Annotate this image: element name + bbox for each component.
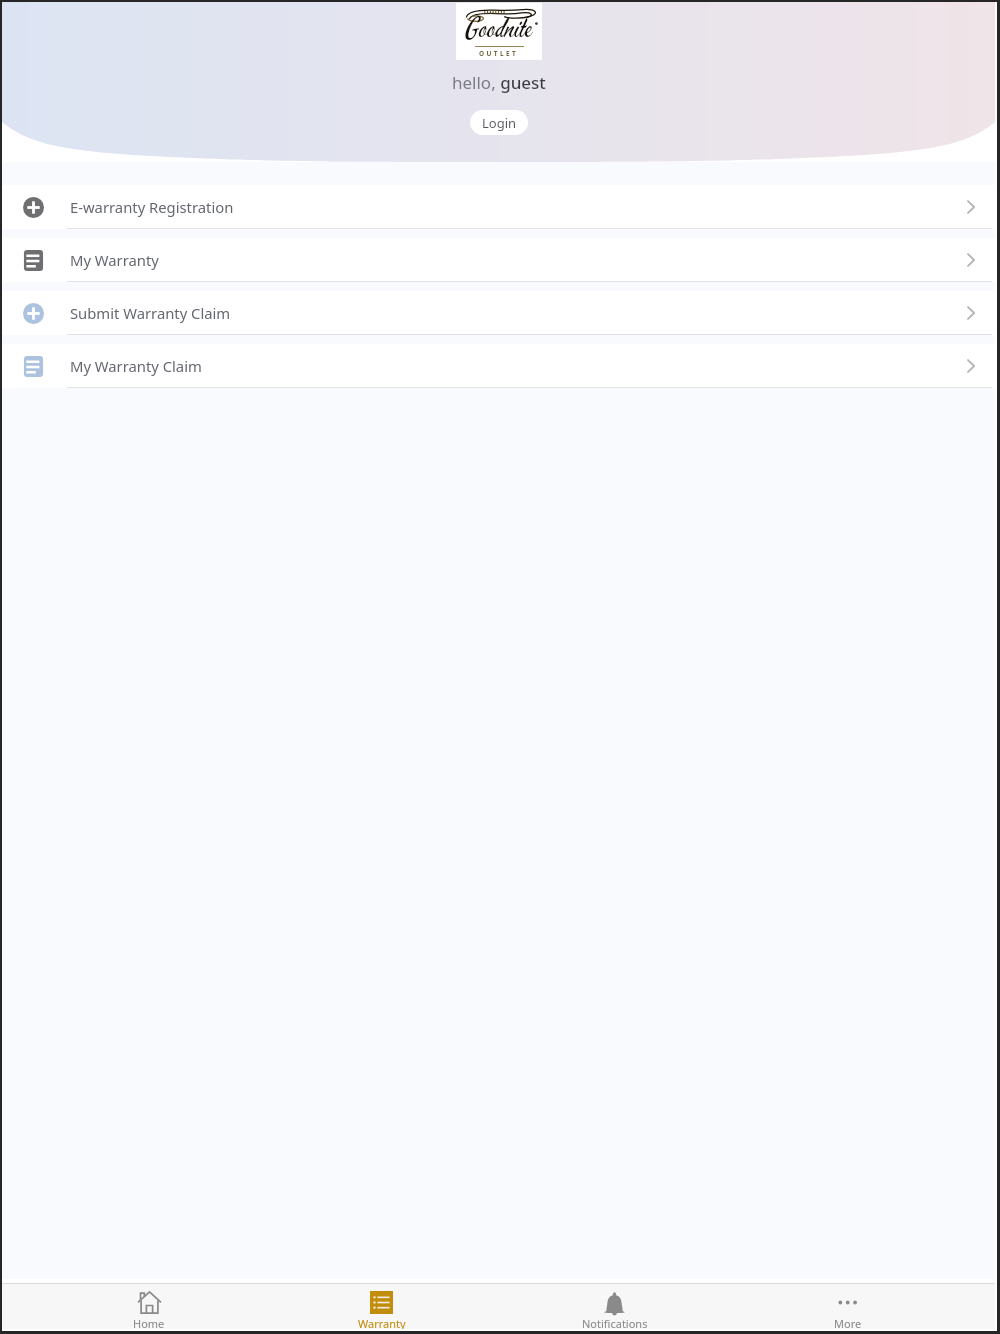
button[interactable]: My Warranty [2,238,995,282]
staticText: OUTLET [479,49,519,58]
button[interactable]: Login [470,110,528,135]
staticText: More [834,1316,862,1329]
staticText: hello, guest [452,71,546,94]
staticText: E-warranty Registration [70,197,234,217]
button[interactable]: My Warranty Claim [2,344,995,388]
staticText: My Warranty [70,250,159,270]
staticText: Login [482,114,517,132]
button[interactable]: Notifications [498,1284,731,1329]
button[interactable]: E-warranty Registration [2,185,995,229]
button[interactable]: More [731,1284,964,1329]
staticText: Home [133,1316,165,1329]
staticText: Notifications [582,1316,648,1329]
staticText: Warranty [358,1316,406,1329]
staticText: Submit Warranty Claim [70,303,231,323]
staticText: My Warranty Claim [70,356,202,376]
staticText: Goodnite [466,10,533,46]
button[interactable]: Warranty [265,1284,498,1329]
button[interactable]: Home [33,1284,265,1329]
button[interactable]: Submit Warranty Claim [2,291,995,335]
